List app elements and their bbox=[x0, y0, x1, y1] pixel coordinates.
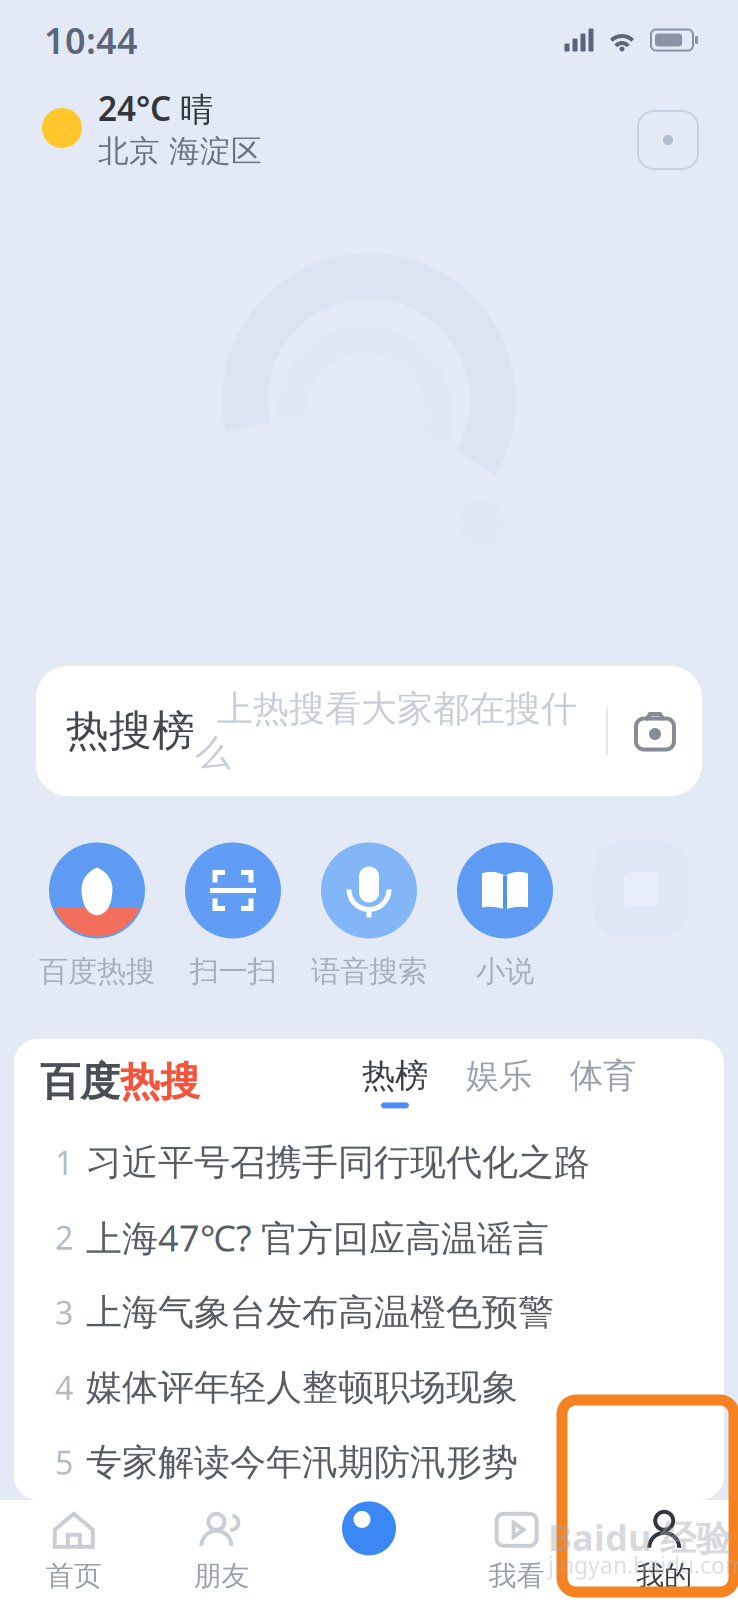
staticText: 我的 bbox=[636, 1559, 692, 1593]
staticText: 24°C 晴 bbox=[98, 86, 213, 130]
staticText: 2 bbox=[55, 1216, 73, 1259]
button[interactable]: 热搜榜 bbox=[36, 666, 702, 796]
staticText: 小说 bbox=[476, 953, 534, 989]
staticText: 热榜 bbox=[362, 1055, 428, 1096]
staticText: 上海47℃? 官方回应高温谣言 bbox=[86, 1214, 549, 1261]
button[interactable]: 百度热搜 bbox=[29, 841, 165, 989]
button[interactable]: 4 bbox=[14, 1350, 724, 1425]
button[interactable]: 我看 bbox=[443, 1500, 590, 1600]
staticText: 百度 bbox=[40, 1057, 120, 1106]
staticText: 热搜榜 bbox=[66, 705, 195, 757]
staticText: 首页 bbox=[46, 1559, 102, 1593]
staticText: 我看 bbox=[489, 1559, 545, 1593]
button[interactable]: 语音搜索 bbox=[301, 841, 437, 989]
staticText: jingyan.baidu.com bbox=[548, 1550, 738, 1580]
staticText: 北京 海淀区 bbox=[98, 132, 262, 170]
staticText: 热搜 bbox=[120, 1057, 200, 1106]
button[interactable]: 1 bbox=[14, 1125, 724, 1200]
button[interactable]: 首页 bbox=[0, 1500, 148, 1600]
staticText: 百度热搜 bbox=[39, 953, 155, 989]
staticText: 朋友 bbox=[193, 1559, 249, 1593]
button[interactable]: 小说 bbox=[437, 841, 573, 989]
staticText: 扫一扫 bbox=[189, 953, 276, 989]
button[interactable]: 5 bbox=[14, 1425, 724, 1500]
staticText: 上热搜看大家都在搜什么 bbox=[195, 687, 577, 775]
staticText: Baidu 经验 bbox=[548, 1513, 732, 1561]
button[interactable]: 我的 bbox=[590, 1500, 738, 1600]
button[interactable]: 3 bbox=[14, 1275, 724, 1350]
button[interactable]: Baidu home bbox=[295, 1500, 443, 1600]
staticText: 娱乐 bbox=[466, 1055, 532, 1096]
staticText: 体育 bbox=[570, 1055, 636, 1096]
staticText: 专家解读今年汛期防汛形势 bbox=[86, 1440, 518, 1484]
staticText: 10:44 bbox=[44, 16, 138, 64]
button[interactable]: 扫一扫 bbox=[165, 841, 301, 989]
staticText: 习近平号召携手同行现代化之路 bbox=[86, 1140, 590, 1184]
button[interactable]: Voice assistant bbox=[630, 90, 706, 166]
staticText: 语音搜索 bbox=[311, 953, 427, 989]
staticText: 媒体评年轻人整顿职场现象 bbox=[86, 1365, 518, 1409]
staticText: 5 bbox=[55, 1441, 73, 1484]
staticText: 4 bbox=[55, 1366, 73, 1409]
staticText: 3 bbox=[55, 1291, 73, 1334]
button[interactable]: 朋友 bbox=[148, 1500, 295, 1600]
button[interactable]: 2 bbox=[14, 1200, 724, 1275]
staticText: 上海气象台发布高温橙色预警 bbox=[86, 1290, 554, 1334]
staticText: 1 bbox=[55, 1141, 73, 1184]
